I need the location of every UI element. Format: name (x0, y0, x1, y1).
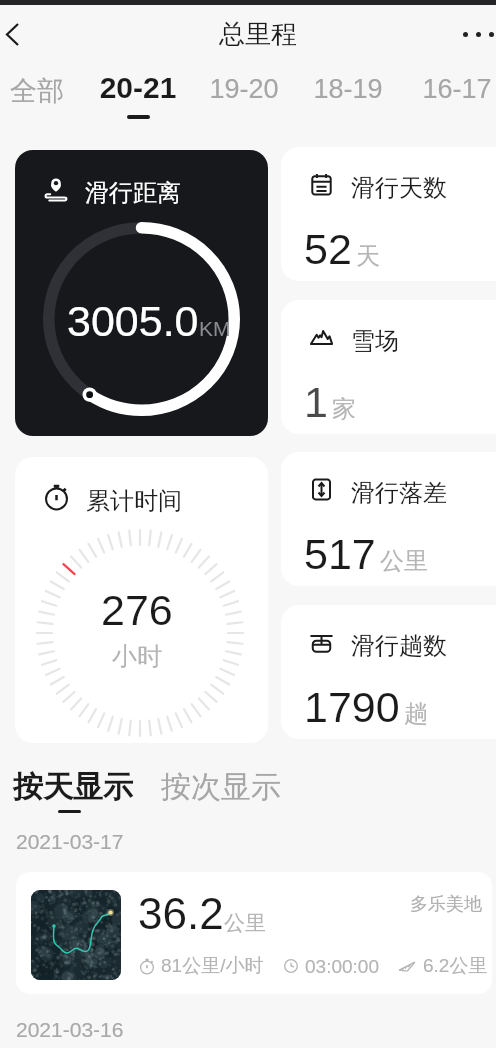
staticText: 16-17 (413, 74, 496, 104)
staticText: 累计时间 (86, 486, 182, 516)
button[interactable]: 按天显示 (8, 764, 138, 810)
staticText: 滑行趟数 (351, 631, 447, 661)
staticText: 雪场 (351, 326, 399, 356)
button[interactable]: 2021-03-16 (16, 1018, 124, 1041)
staticText: 公里 (380, 546, 428, 576)
button[interactable]: 滑行趟数 (281, 605, 496, 739)
button[interactable]: 按次显示 (156, 764, 286, 810)
staticText: 36.2 (138, 889, 224, 938)
button[interactable]: 16-17 (413, 66, 496, 122)
staticText: 小时 (112, 641, 162, 672)
staticText: 19-20 (200, 74, 288, 104)
staticText: 52 (304, 225, 352, 273)
staticText: 2021-03-17 (16, 830, 124, 853)
button[interactable]: 18-19 (304, 66, 392, 122)
staticText: 按天显示 (13, 768, 133, 806)
staticText: 20-21 (94, 71, 182, 105)
staticText: 滑行落差 (351, 478, 447, 508)
button[interactable]: 雪场 (281, 300, 496, 434)
staticText: 18-19 (304, 74, 392, 104)
button[interactable]: 累计时间 (15, 457, 268, 743)
staticText: 517 (304, 530, 376, 578)
staticText: 1 (304, 378, 328, 426)
staticText: 按次显示 (161, 768, 281, 806)
staticText: 1790 (304, 683, 400, 731)
staticText: 滑行天数 (351, 173, 447, 203)
staticText: 多乐美地 (410, 893, 482, 916)
button[interactable]: 19-20 (200, 66, 288, 122)
button[interactable]: 36.2 (16, 872, 492, 994)
button[interactable]: More options (450, 11, 496, 57)
button[interactable]: 滑行距离 (15, 150, 268, 436)
staticText: 公里 (224, 910, 266, 936)
staticText: 天 (356, 241, 380, 271)
staticText: KM (199, 317, 231, 340)
staticText: 全部 (0, 74, 81, 108)
button[interactable]: 滑行落差 (281, 452, 496, 586)
staticText: 家 (332, 394, 356, 424)
staticText: 81公里/小时 (161, 954, 264, 978)
staticText: 03:00:00 (305, 956, 379, 977)
staticText: 滑行距离 (85, 178, 181, 208)
button[interactable]: 2021-03-17 (16, 830, 124, 853)
staticText: 总里程 (219, 18, 297, 51)
button[interactable]: 20-21 (94, 66, 182, 122)
staticText: 6.2公里 (423, 954, 488, 978)
staticText: 趟 (404, 699, 428, 729)
staticText: 276 (101, 586, 173, 634)
staticText: 2021-03-16 (16, 1018, 124, 1041)
button[interactable]: 全部 (0, 66, 81, 122)
button[interactable]: Back (0, 13, 42, 55)
staticText: 3005.0 (67, 297, 199, 345)
button[interactable]: 滑行天数 (281, 147, 496, 281)
